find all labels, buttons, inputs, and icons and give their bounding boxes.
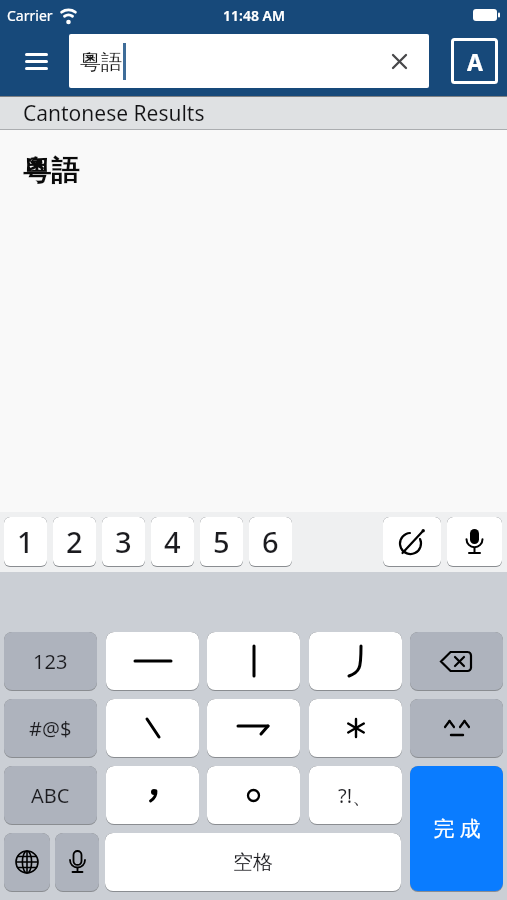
button[interactable]: 4 [151, 517, 194, 567]
staticText: 空格 [233, 850, 273, 875]
staticText: 粵語 [23, 153, 79, 188]
button[interactable] [207, 766, 300, 825]
staticText: 2 [66, 522, 83, 561]
button[interactable]: 粵語 [0, 130, 507, 512]
button[interactable] [383, 517, 441, 567]
button[interactable] [106, 766, 199, 825]
button[interactable] [410, 699, 503, 758]
button[interactable]: 3 [102, 517, 145, 567]
staticText: ABC [31, 782, 70, 809]
button[interactable] [309, 632, 402, 691]
staticText: ?!、 [338, 782, 373, 809]
staticText: 3 [115, 522, 132, 561]
button[interactable]: 粵語 [69, 34, 429, 88]
button[interactable] [447, 517, 502, 567]
button[interactable]: ABC [4, 766, 97, 825]
button[interactable]: ?!、 [309, 766, 402, 825]
staticText: 1 [17, 522, 34, 561]
button[interactable] [106, 699, 199, 758]
button[interactable] [55, 833, 99, 892]
staticText: 11:48 AM [223, 6, 285, 25]
button[interactable]: 空格 [105, 833, 401, 892]
button[interactable]: 完成 [410, 766, 503, 892]
button[interactable] [207, 632, 300, 691]
button[interactable]: 123 [4, 632, 97, 691]
staticText: 完成 [431, 816, 483, 842]
button[interactable] [4, 833, 50, 892]
button[interactable]: 5 [200, 517, 243, 567]
button[interactable]: A [451, 38, 498, 84]
staticText: Cantonese Results [23, 99, 205, 128]
staticText: 6 [262, 522, 279, 561]
staticText: 4 [164, 522, 181, 561]
staticText: 5 [213, 522, 230, 561]
staticText: A [467, 46, 483, 77]
button[interactable] [410, 632, 503, 691]
button[interactable] [309, 699, 402, 758]
button[interactable]: 2 [53, 517, 96, 567]
button[interactable] [106, 632, 199, 691]
staticText: 123 [33, 648, 68, 675]
staticText: Carrier [7, 6, 53, 25]
button[interactable] [12, 37, 60, 85]
button[interactable]: #@$ [4, 699, 97, 758]
button[interactable] [207, 699, 300, 758]
button[interactable]: 1 [4, 517, 47, 567]
staticText: #@$ [29, 715, 72, 742]
staticText: 粵語 [80, 49, 122, 75]
button[interactable]: 6 [249, 517, 292, 567]
